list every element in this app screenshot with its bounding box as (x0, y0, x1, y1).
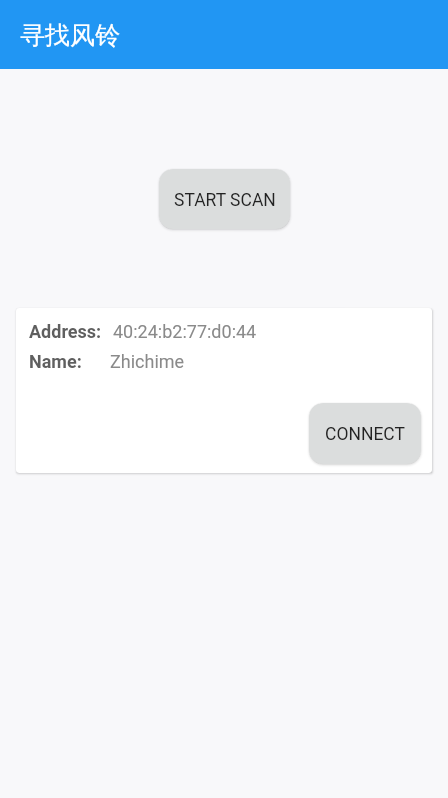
staticText: CONNECT (325, 424, 405, 445)
staticText: START SCAN (174, 190, 276, 211)
staticText: 寻找风铃 (20, 20, 120, 51)
staticText: Address: (29, 321, 102, 342)
button[interactable]: CONNECT (309, 403, 421, 464)
staticText: Name: (29, 351, 82, 372)
button[interactable]: START SCAN (159, 169, 290, 229)
staticText: Zhichime (110, 351, 185, 372)
staticText: 40:24:b2:77:d0:44 (113, 321, 257, 342)
